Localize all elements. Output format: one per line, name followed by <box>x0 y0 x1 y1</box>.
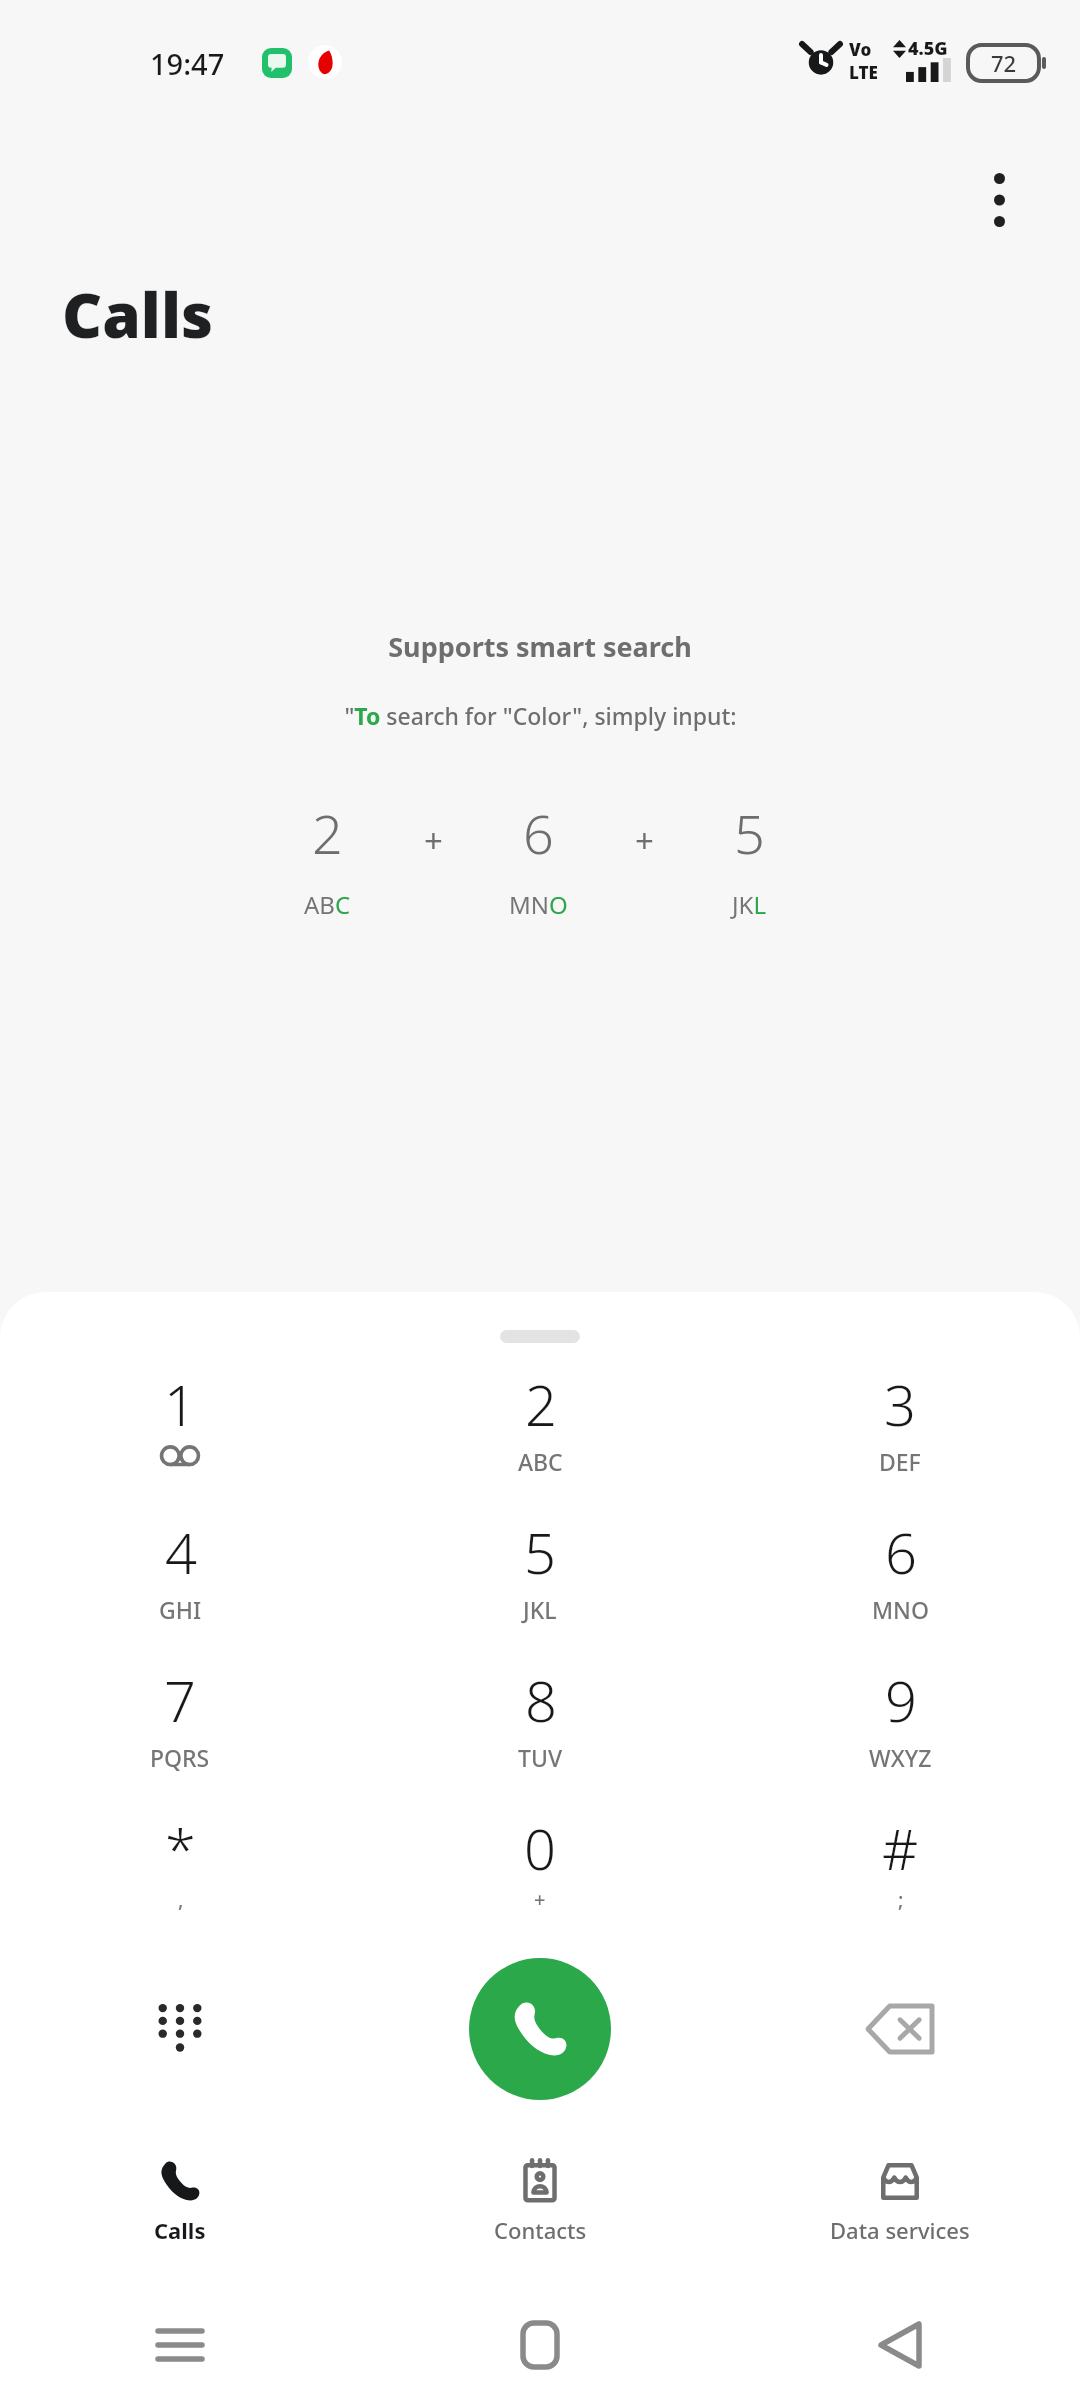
staticText: LTE <box>849 61 878 84</box>
button[interactable]: 9 <box>720 1662 1080 1810</box>
button[interactable]: Contacts <box>360 2132 720 2272</box>
button[interactable]: 1 <box>0 1366 360 1514</box>
staticText: "To search for "Color", simply input: <box>344 700 737 731</box>
button[interactable]: Keypad <box>0 1944 360 2114</box>
staticText: ABC <box>304 888 351 921</box>
button[interactable]: Back <box>720 2290 1080 2400</box>
button[interactable]: 6 <box>720 1514 1080 1662</box>
staticText: ABC <box>518 1446 563 1477</box>
staticText: ; <box>898 1886 904 1913</box>
staticText: 3 <box>884 1366 916 1442</box>
staticText: + <box>635 818 654 863</box>
staticText: 8 <box>525 1662 557 1738</box>
staticText: 72 <box>991 48 1017 78</box>
staticText: 2 <box>525 1366 557 1442</box>
staticText: GHI <box>159 1594 202 1625</box>
staticText: + <box>534 1886 546 1913</box>
button[interactable]: 7 <box>0 1662 360 1810</box>
staticText: Data services <box>830 2215 970 2245</box>
button[interactable]: Home <box>360 2290 720 2400</box>
button[interactable]: Data services <box>720 2132 1080 2272</box>
button[interactable]: 3 <box>720 1366 1080 1514</box>
button[interactable]: More options <box>962 158 1036 242</box>
button[interactable]: Recents <box>0 2290 360 2400</box>
button[interactable]: * <box>0 1810 360 1958</box>
staticText: 4 <box>165 1514 197 1590</box>
button[interactable]: 4 <box>0 1514 360 1662</box>
button[interactable]: 8 <box>360 1662 720 1810</box>
button[interactable]: Call <box>469 1958 611 2100</box>
staticText: JKL <box>732 888 766 921</box>
staticText: 4.5G <box>908 36 948 61</box>
staticText: 19:47 <box>150 44 225 83</box>
staticText: Vo <box>849 38 872 61</box>
staticText: WXYZ <box>869 1742 932 1773</box>
button[interactable]: 0 <box>360 1810 720 1958</box>
button[interactable]: Calls <box>0 2132 360 2272</box>
staticText: 0 <box>524 1810 556 1886</box>
staticText: MNO <box>509 888 568 921</box>
staticText: * <box>165 1810 196 1886</box>
staticText: PQRS <box>150 1742 210 1773</box>
staticText: 9 <box>885 1662 917 1738</box>
staticText: 6 <box>885 1514 917 1590</box>
staticText: + <box>424 818 443 863</box>
staticText: Calls <box>154 2215 206 2245</box>
staticText: 1 <box>164 1366 196 1442</box>
staticText: 5 <box>734 796 765 870</box>
staticText: Calls <box>62 272 213 356</box>
staticText: , <box>178 1886 184 1913</box>
staticText: 5 <box>524 1514 556 1590</box>
button[interactable]: 2 <box>360 1366 720 1514</box>
staticText: Supports smart search <box>388 628 692 665</box>
staticText: 2 <box>312 796 343 870</box>
staticText: Contacts <box>494 2215 587 2245</box>
staticText: MNO <box>872 1594 929 1625</box>
button[interactable]: 5 <box>360 1514 720 1662</box>
staticText: 7 <box>164 1662 196 1738</box>
staticText: JKL <box>523 1594 557 1625</box>
button[interactable]: # <box>720 1810 1080 1958</box>
staticText: DEF <box>879 1446 921 1477</box>
staticText: TUV <box>518 1742 563 1773</box>
staticText: 6 <box>523 796 554 870</box>
staticText: # <box>882 1810 919 1886</box>
button[interactable]: Delete <box>720 1944 1080 2114</box>
